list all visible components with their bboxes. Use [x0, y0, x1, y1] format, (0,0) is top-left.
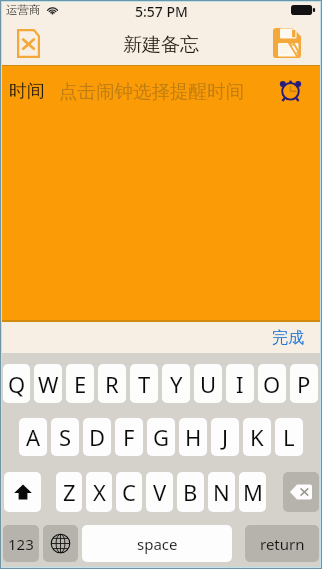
button[interactable]: I	[226, 364, 254, 403]
staticText: B	[183, 477, 198, 507]
staticText: S	[59, 422, 72, 452]
button[interactable]: 完成	[272, 328, 304, 348]
button[interactable]: V	[146, 472, 173, 512]
button[interactable]: X	[86, 472, 112, 512]
button[interactable]: L	[275, 418, 303, 456]
button[interactable]: D	[83, 418, 111, 456]
staticText: T	[138, 369, 151, 399]
staticText: Y	[170, 369, 183, 399]
button[interactable]: 123	[3, 525, 39, 562]
button[interactable]: K	[243, 418, 271, 456]
staticText: H	[185, 422, 202, 452]
staticText: V	[153, 477, 167, 507]
staticText: K	[250, 422, 264, 452]
staticText: W	[38, 369, 59, 399]
staticText: G	[153, 422, 170, 452]
button[interactable]: U	[194, 364, 222, 403]
staticText: X	[93, 477, 106, 507]
staticText: C	[122, 477, 136, 507]
staticText: N	[213, 477, 230, 507]
staticText: P	[297, 369, 311, 399]
button[interactable]: O	[258, 364, 286, 403]
staticText: 5:57 PM	[135, 2, 188, 21]
button[interactable]: return	[245, 525, 319, 562]
staticText: I	[236, 369, 244, 399]
button[interactable]: R	[98, 364, 126, 403]
button[interactable]: Shift	[4, 472, 41, 512]
staticText: O	[263, 369, 281, 399]
button[interactable]: space	[82, 525, 232, 562]
staticText: 完成	[272, 328, 304, 348]
button[interactable]: C	[116, 472, 142, 512]
button[interactable]: Backspace	[283, 472, 319, 512]
button[interactable]: Cancel	[11, 26, 45, 60]
button[interactable]: H	[179, 418, 207, 456]
staticText: space	[137, 534, 178, 554]
staticText: A	[26, 422, 41, 452]
button[interactable]: M	[239, 472, 266, 512]
staticText: R	[105, 369, 119, 399]
button[interactable]: B	[177, 472, 204, 512]
button[interactable]: Alarm	[274, 73, 306, 105]
staticText: D	[89, 422, 106, 452]
button[interactable]: N	[208, 472, 235, 512]
button[interactable]: A	[19, 418, 47, 456]
button[interactable]: Globe	[43, 525, 78, 562]
button[interactable]: T	[130, 364, 158, 403]
button[interactable]: P	[290, 364, 318, 403]
staticText: Q	[8, 369, 26, 399]
button[interactable]: F	[115, 418, 143, 456]
button[interactable]: W	[34, 364, 62, 403]
staticText: Z	[63, 477, 76, 507]
button[interactable]: S	[51, 418, 79, 456]
staticText: E	[74, 369, 87, 399]
staticText: F	[123, 422, 135, 452]
button[interactable]: E	[66, 364, 94, 403]
button[interactable]: G	[147, 418, 175, 456]
staticText: 点击闹钟选择提醒时间	[59, 80, 244, 103]
button[interactable]: Y	[162, 364, 190, 403]
staticText: return	[260, 534, 305, 554]
button[interactable]: Q	[3, 364, 30, 403]
staticText: U	[200, 369, 217, 399]
staticText: L	[283, 422, 295, 452]
staticText: M	[243, 477, 263, 507]
staticText: 123	[8, 534, 34, 554]
staticText: 运营商	[6, 3, 41, 17]
button[interactable]: J	[211, 418, 239, 456]
button[interactable]: Save	[270, 26, 304, 60]
staticText: J	[222, 422, 229, 452]
staticText: 新建备忘	[123, 33, 199, 57]
button[interactable]: Z	[56, 472, 82, 512]
staticText: 时间	[9, 80, 45, 103]
